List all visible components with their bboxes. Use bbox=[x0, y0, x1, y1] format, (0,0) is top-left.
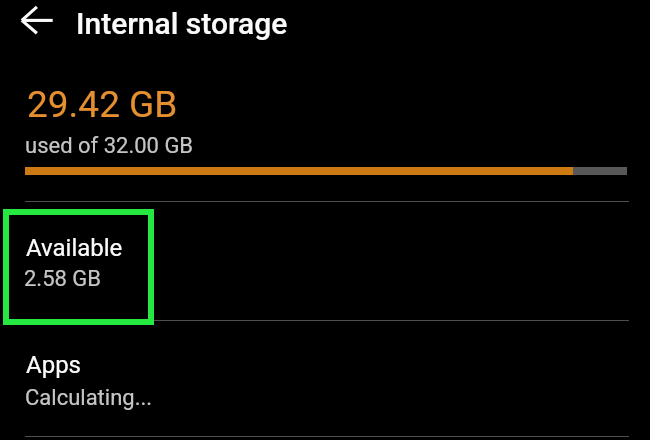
button[interactable]: Navigate up bbox=[12, 3, 66, 37]
staticText: Internal storage bbox=[76, 6, 288, 41]
staticText: 2.58 GB bbox=[24, 266, 102, 292]
staticText: used of 32.00 GB bbox=[25, 133, 194, 159]
staticText: Available bbox=[26, 234, 123, 262]
staticText: Apps bbox=[26, 351, 81, 379]
button[interactable]: Available bbox=[0, 202, 650, 320]
staticText: 29.42 GB bbox=[27, 83, 178, 126]
button[interactable]: Apps bbox=[0, 321, 650, 436]
staticText: Calculating... bbox=[25, 385, 153, 411]
